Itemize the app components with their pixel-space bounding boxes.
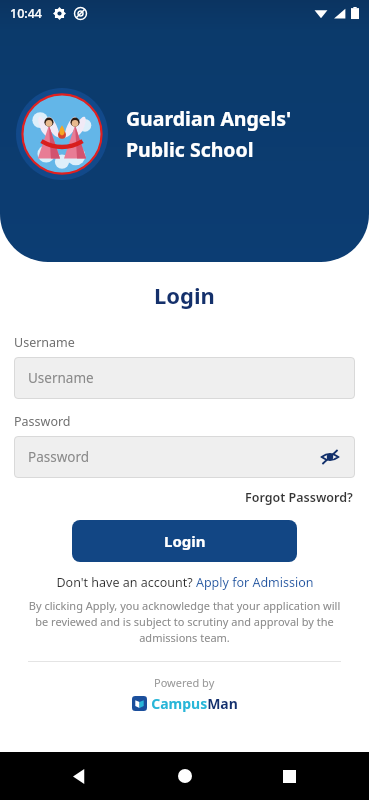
staticText: Don't have an account? Apply for Admissi… (56, 574, 314, 591)
staticText: Login (154, 280, 215, 310)
staticText: Password (14, 413, 71, 430)
staticText: Public School (126, 136, 254, 163)
staticText: 10:44 (10, 5, 43, 22)
button[interactable]: Back (56, 752, 104, 800)
button[interactable]: Recent apps (265, 752, 313, 800)
staticText: Powered by (154, 675, 215, 690)
staticText: Forgot Password? (245, 489, 353, 506)
staticText: Password (28, 448, 90, 466)
staticText: CampusMan (151, 694, 238, 713)
staticText: Guardian Angels' (126, 105, 292, 132)
button[interactable]: Home (161, 752, 209, 800)
button[interactable]: Forgot Password? (243, 487, 355, 508)
button[interactable]: Username (14, 357, 355, 399)
staticText: Username (28, 369, 94, 387)
button[interactable]: Don't have an account? Apply for Admissi… (14, 574, 355, 591)
button[interactable]: Password (14, 436, 355, 478)
staticText: Username (14, 334, 75, 351)
button[interactable]: Show password (317, 444, 343, 470)
staticText: Login (164, 531, 206, 551)
button[interactable]: Login (72, 520, 297, 562)
staticText: By clicking Apply, you acknowledge that … (26, 598, 343, 645)
